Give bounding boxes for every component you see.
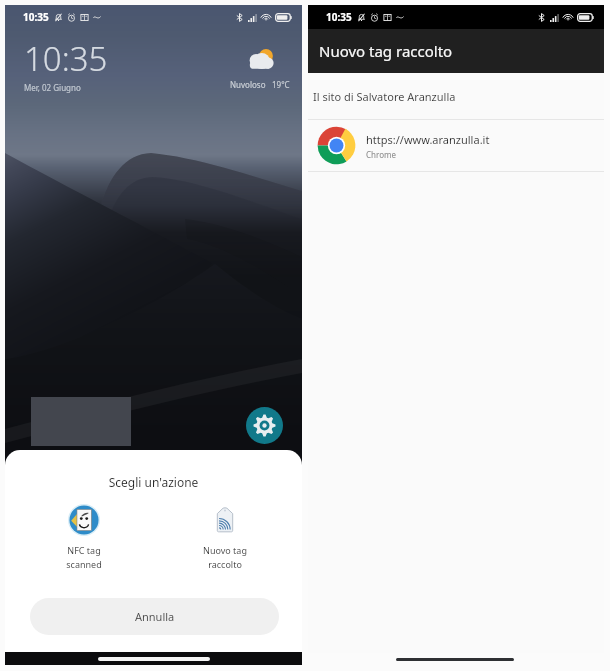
staticText: 19°C <box>272 79 290 90</box>
staticText: 10:35 <box>24 36 108 81</box>
button[interactable]: Tasker settings <box>246 407 283 444</box>
staticText: Annulla <box>135 609 175 624</box>
staticText: https://www.aranzulla.it <box>366 132 490 147</box>
button[interactable]: https://www.aranzulla.it <box>308 120 604 171</box>
staticText: Il sito di Salvatore Aranzulla <box>313 89 456 104</box>
staticText: scanned <box>66 558 102 570</box>
staticText: raccolto <box>208 558 242 570</box>
staticText: 10:35 <box>326 10 352 24</box>
staticText: Nuovo tag <box>203 544 247 556</box>
staticText: Scegli un'azione <box>5 474 302 490</box>
button[interactable]: Annulla <box>30 598 279 635</box>
staticText: NFC tag <box>67 544 101 556</box>
button[interactable]: NFC tag <box>14 504 154 570</box>
staticText: Nuovo tag raccolto <box>319 41 453 61</box>
button[interactable]: Nuovo tag <box>154 504 295 570</box>
staticText: Chrome <box>366 149 396 160</box>
staticText: Mer, 02 Giugno <box>24 82 81 93</box>
staticText: Nuvoloso <box>230 79 266 90</box>
staticText: 10:35 <box>23 10 49 24</box>
